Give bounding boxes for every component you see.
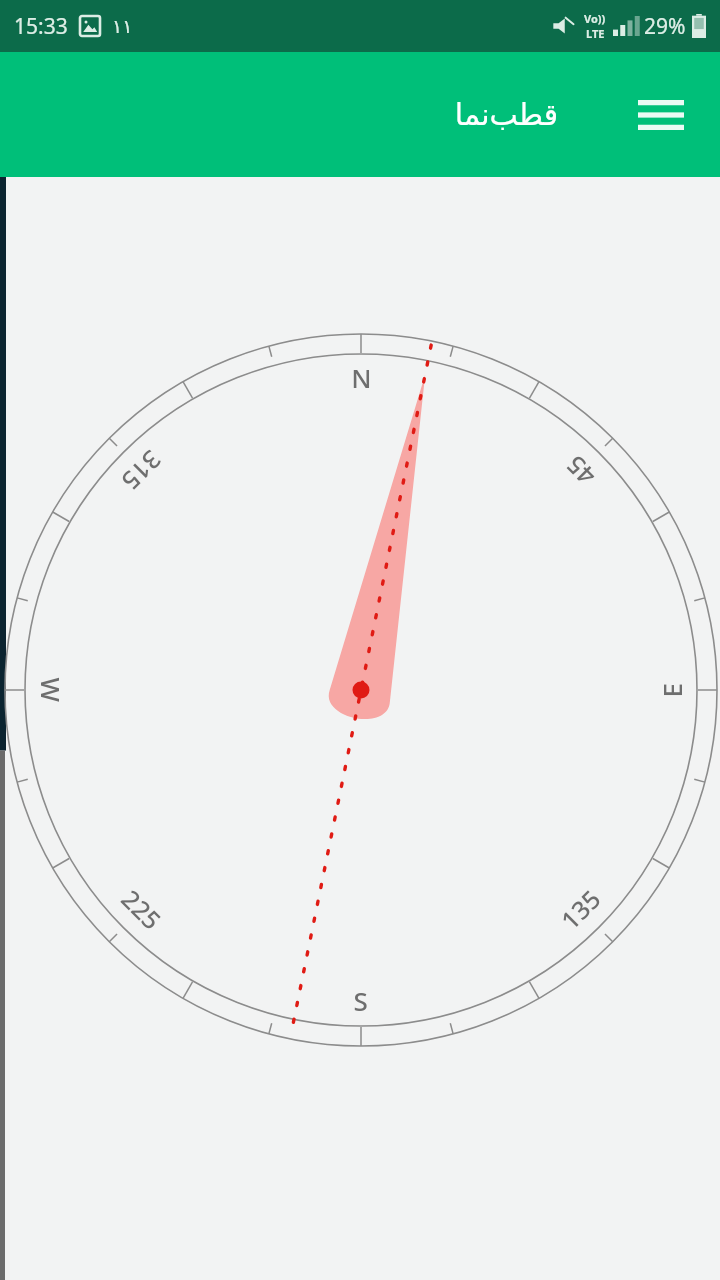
staticText: Vo)) [584,11,606,26]
staticText: ١١ [112,15,133,37]
staticText: 29% [644,12,686,41]
staticText: قطب‌نما [454,97,558,132]
button[interactable]: Compass dial [0,177,720,1280]
staticText: 15:33 [14,12,68,41]
staticText: LTE [586,26,605,41]
button[interactable]: Menu [630,84,692,146]
